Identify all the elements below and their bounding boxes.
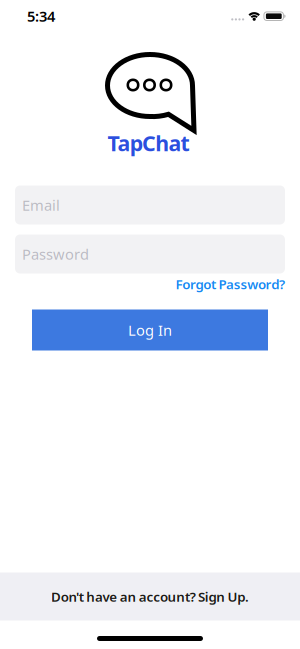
button[interactable]: Email [15, 185, 285, 224]
staticText: Log In [128, 320, 172, 340]
staticText: Forgot Password? [175, 275, 285, 293]
button[interactable]: Password [15, 234, 285, 273]
button[interactable]: Log In [32, 309, 268, 350]
button[interactable]: Don't have an account? Sign Up. [0, 572, 300, 620]
staticText: Email [22, 195, 60, 215]
staticText: Password [22, 244, 89, 264]
button[interactable]: Forgot Password? [175, 275, 285, 293]
staticText: Don't have an account? Sign Up. [51, 588, 249, 605]
staticText: TapChat [107, 129, 190, 157]
staticText: 5:34 [27, 6, 55, 26]
